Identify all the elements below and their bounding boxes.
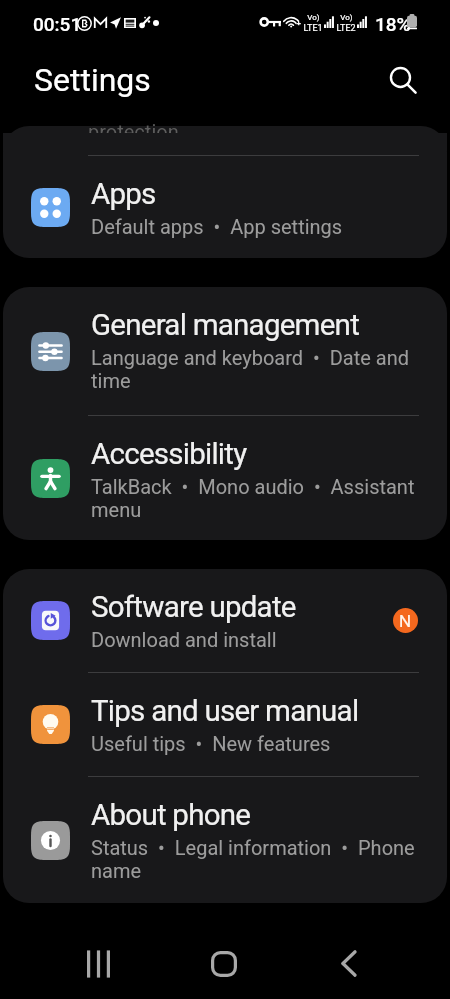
staticText: General management (91, 308, 360, 343)
button[interactable]: Search (380, 57, 426, 103)
staticText: Vo) (340, 13, 353, 22)
staticText: Default apps • App settings (91, 215, 343, 238)
button[interactable]: Back (325, 926, 375, 999)
staticText: protection (88, 120, 179, 143)
staticText: Accessibility (91, 437, 247, 472)
staticText: N (399, 611, 412, 631)
button[interactable]: Recent apps (73, 926, 123, 999)
staticText: TalkBack • Mono audio • Assistant menu (91, 475, 437, 521)
staticText: Language and keyboard • Date and time (91, 346, 437, 392)
staticText: Status • Legal information • Phone name (91, 836, 437, 882)
staticText: Apps (91, 177, 156, 212)
button[interactable]: Tips and user manual (3, 673, 447, 776)
button[interactable]: General management (3, 287, 447, 415)
staticText: Settings (34, 61, 151, 99)
button[interactable]: Accessibility (3, 416, 447, 540)
staticText: 18% (375, 13, 411, 35)
button[interactable]: About phone (3, 777, 447, 903)
staticText: Download and install (91, 628, 277, 651)
staticText: LTE1 (303, 23, 323, 34)
button[interactable]: Home (199, 926, 249, 999)
staticText: Software update (91, 590, 296, 625)
button[interactable]: Software update (3, 569, 447, 672)
staticText: Tips and user manual (91, 694, 359, 729)
staticText: 00:51 (33, 13, 82, 35)
button[interactable]: Apps (3, 156, 447, 258)
staticText: Vo) (307, 13, 320, 22)
staticText: LTE2 (336, 23, 356, 34)
staticText: Useful tips • New features (91, 732, 331, 755)
staticText: About phone (91, 798, 251, 833)
